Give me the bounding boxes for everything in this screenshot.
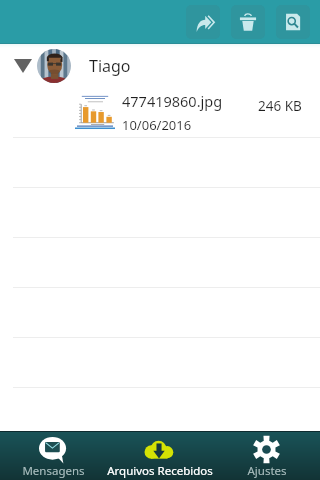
- staticText: 477419860.jpg: [122, 91, 223, 111]
- button[interactable]: Share: [186, 5, 220, 39]
- button[interactable]: Tiago: [0, 44, 320, 88]
- staticText: Mensagens: [22, 463, 85, 479]
- staticText: Ajustes: [247, 463, 287, 479]
- button[interactable]: Mensagens: [0, 431, 106, 480]
- button[interactable]: Ajustes: [213, 431, 320, 480]
- button[interactable]: Preview: [276, 5, 310, 39]
- button[interactable]: Delete: [231, 5, 265, 39]
- staticText: Arquivos Recebidos: [107, 463, 213, 479]
- staticText: 246 KB: [258, 97, 302, 115]
- button[interactable]: 477419860.jpg: [0, 88, 320, 138]
- button[interactable]: Arquivos Recebidos: [106, 431, 213, 480]
- staticText: Tiago: [89, 55, 131, 77]
- staticText: 10/06/2016: [122, 116, 192, 134]
